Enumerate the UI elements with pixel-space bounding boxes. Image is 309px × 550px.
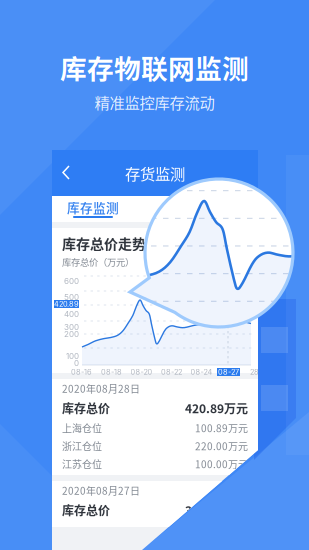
staticText: 08-27 (218, 368, 239, 376)
staticText: 08-16 (71, 368, 92, 376)
button[interactable]: 库存监测 (60, 196, 126, 222)
staticText: 库存总价（万元） (62, 255, 134, 268)
staticText: 420.89 (54, 300, 79, 308)
staticText: 库存总价 (62, 501, 110, 519)
staticText: 400 (64, 309, 79, 319)
button[interactable]: Back (59, 163, 81, 183)
staticText: 2020年08月28日 (62, 381, 140, 396)
staticText: 398.10万元 (185, 501, 248, 519)
staticText: 28 (250, 368, 259, 376)
staticText: 0 (74, 358, 79, 368)
staticText: 库存监测 (67, 198, 119, 216)
staticText: 100 (66, 351, 79, 361)
staticText: 08-22 (161, 368, 182, 376)
staticText: 精准监控库存流动 (94, 91, 214, 113)
staticText: 600 (64, 276, 79, 286)
staticText: 库存总价走势 (62, 233, 146, 253)
staticText: 浙江仓位 (62, 439, 102, 453)
staticText: 220.00万元 (195, 439, 248, 453)
staticText: 100.89万元 (195, 421, 248, 435)
staticText: 2020年08月27日 (62, 483, 140, 498)
staticText: 库存总价 (62, 399, 110, 417)
staticText: 420.89万元 (185, 399, 248, 417)
staticText: 08-20 (130, 368, 152, 376)
staticText: 库存物联网监测 (60, 48, 249, 86)
staticText: 300 (64, 322, 79, 332)
staticText: 500 (64, 292, 79, 302)
staticText: 200 (64, 329, 79, 339)
staticText: 100.00万元 (195, 457, 248, 471)
staticText: 存货监测 (125, 162, 185, 184)
staticText: 08-24 (190, 368, 212, 376)
staticText: 上海仓位 (62, 421, 102, 435)
staticText: 08-18 (101, 368, 122, 376)
staticText: 江苏仓位 (62, 457, 102, 471)
